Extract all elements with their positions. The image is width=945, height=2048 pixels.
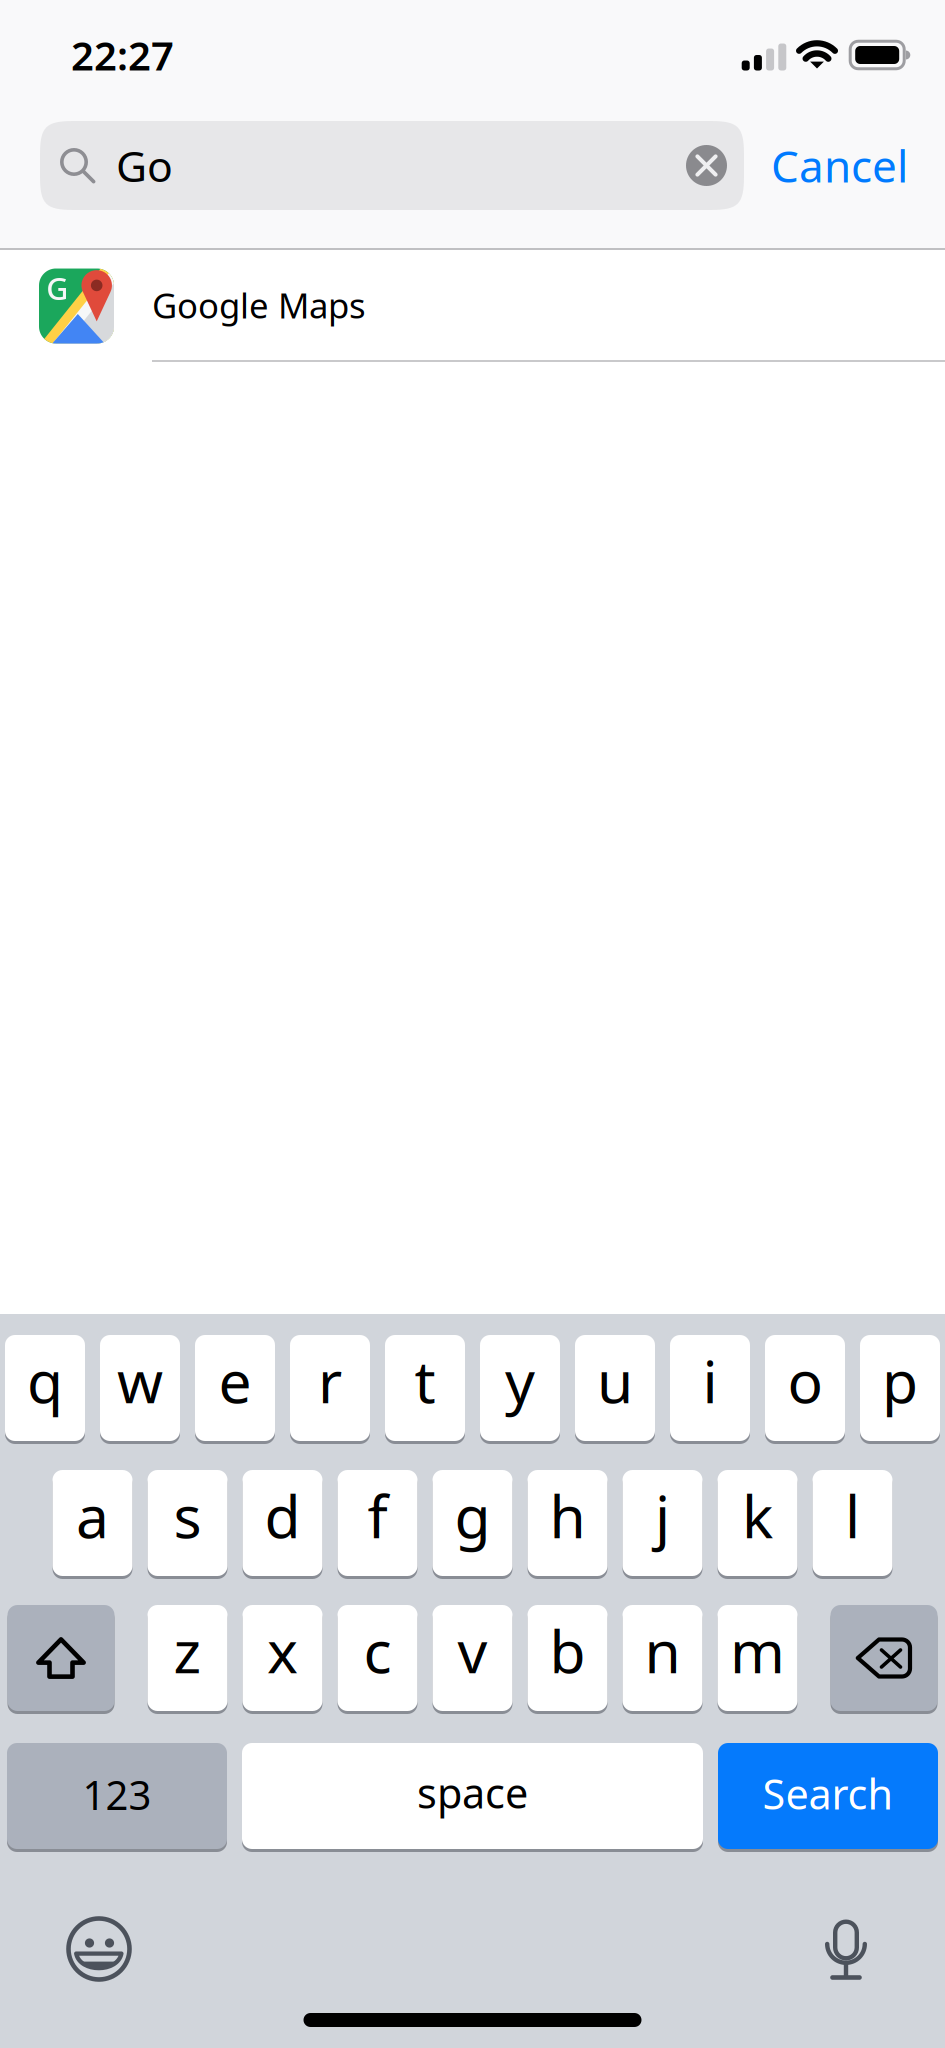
staticText: o: [787, 1341, 822, 1419]
button[interactable]: Shift: [7, 1605, 114, 1714]
button[interactable]: Cancel: [771, 136, 908, 195]
staticText: t: [414, 1341, 435, 1419]
staticText: i: [702, 1341, 717, 1419]
button[interactable]: j: [622, 1470, 702, 1579]
staticText: 22:27: [71, 28, 174, 81]
button[interactable]: a: [52, 1470, 132, 1579]
button[interactable]: Dictation: [825, 1917, 867, 1981]
button[interactable]: s: [147, 1470, 227, 1579]
staticText: G: [46, 268, 68, 308]
staticText: b: [549, 1611, 585, 1689]
staticText: e: [218, 1341, 251, 1419]
staticText: c: [363, 1611, 391, 1689]
staticText: space: [417, 1765, 528, 1820]
button[interactable]: x: [242, 1605, 322, 1714]
button[interactable]: c: [337, 1605, 417, 1714]
staticText: s: [173, 1476, 201, 1554]
button[interactable]: b: [527, 1605, 607, 1714]
button[interactable]: f: [337, 1470, 417, 1579]
staticText: n: [644, 1611, 680, 1689]
button[interactable]: Delete: [830, 1605, 937, 1714]
staticText: d: [264, 1476, 300, 1554]
button[interactable]: i: [670, 1335, 750, 1444]
staticText: h: [549, 1476, 585, 1554]
staticText: u: [597, 1341, 633, 1419]
staticText: g: [454, 1476, 490, 1554]
staticText: Cancel: [771, 136, 908, 195]
staticText: x: [267, 1611, 298, 1689]
button[interactable]: q: [5, 1335, 85, 1444]
staticText: k: [742, 1476, 773, 1554]
button[interactable]: space: [242, 1743, 703, 1852]
button[interactable]: n: [622, 1605, 702, 1714]
staticText: Search: [762, 1766, 893, 1821]
staticText: f: [367, 1476, 387, 1554]
button[interactable]: w: [100, 1335, 180, 1444]
button[interactable]: m: [717, 1605, 797, 1714]
staticText: m: [730, 1611, 785, 1689]
button[interactable]: v: [432, 1605, 512, 1714]
staticText: v: [457, 1611, 487, 1689]
staticText: y: [505, 1341, 535, 1419]
button[interactable]: t: [385, 1335, 465, 1444]
button[interactable]: r: [290, 1335, 370, 1444]
staticText: a: [76, 1476, 109, 1554]
button[interactable]: d: [242, 1470, 322, 1579]
staticText: r: [318, 1341, 342, 1419]
staticText: 123: [82, 1768, 151, 1821]
staticText: l: [845, 1476, 860, 1554]
button[interactable]: Search: [718, 1743, 938, 1852]
button[interactable]: g: [432, 1470, 512, 1579]
staticText: Google Maps: [152, 282, 366, 328]
staticText: z: [173, 1611, 201, 1689]
button[interactable]: G: [0, 250, 945, 362]
staticText: q: [27, 1341, 63, 1419]
staticText: j: [655, 1476, 670, 1554]
button[interactable]: l: [812, 1470, 892, 1579]
button[interactable]: u: [575, 1335, 655, 1444]
button[interactable]: e: [195, 1335, 275, 1444]
button[interactable]: z: [147, 1605, 227, 1714]
button[interactable]: Emoji keyboard: [66, 1916, 132, 1982]
button[interactable]: o: [765, 1335, 845, 1444]
staticText: Go: [116, 137, 173, 194]
button[interactable]: k: [717, 1470, 797, 1579]
staticText: w: [117, 1341, 163, 1419]
button[interactable]: p: [860, 1335, 940, 1444]
button[interactable]: 123: [7, 1743, 227, 1852]
button[interactable]: h: [527, 1470, 607, 1579]
button[interactable]: y: [480, 1335, 560, 1444]
button[interactable]: Clear text: [686, 145, 744, 186]
staticText: p: [882, 1341, 918, 1419]
